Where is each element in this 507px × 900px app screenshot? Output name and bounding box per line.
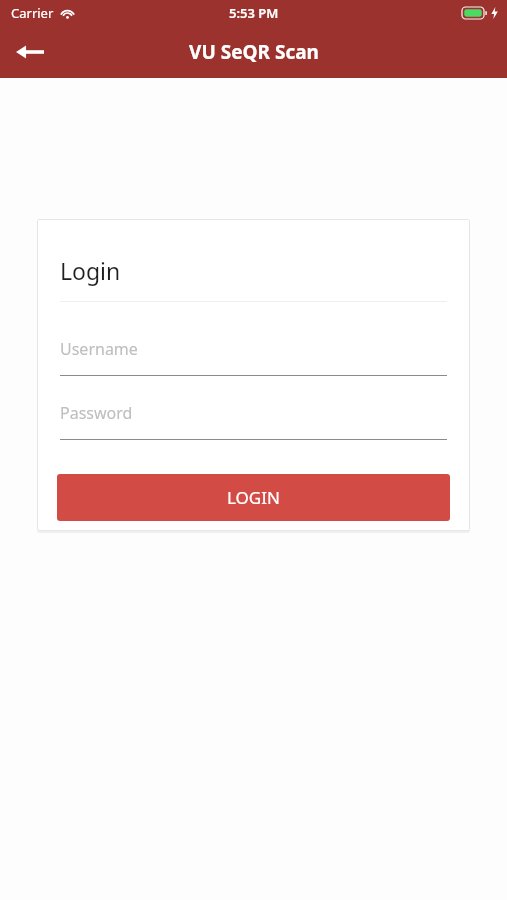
button[interactable]: Back	[8, 30, 52, 74]
staticText: Carrier	[11, 4, 54, 22]
staticText: VU SeQR Scan	[189, 39, 319, 65]
staticText: Password	[60, 402, 133, 424]
button[interactable]: Password	[60, 402, 447, 440]
staticText: 5:53 PM	[229, 4, 279, 22]
staticText: LOGIN	[227, 486, 280, 509]
button[interactable]: Username	[60, 338, 447, 376]
staticText: Login	[60, 255, 121, 286]
button[interactable]: LOGIN	[57, 474, 450, 521]
staticText: Username	[60, 338, 138, 360]
